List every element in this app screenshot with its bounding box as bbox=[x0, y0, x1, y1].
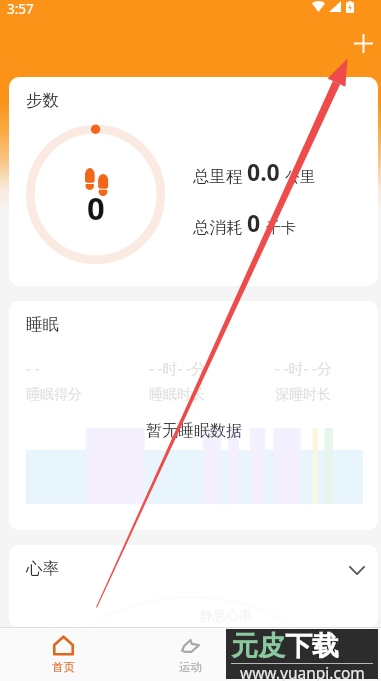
staticText: 睡眠时长 bbox=[149, 386, 205, 404]
staticText: 首页 bbox=[52, 660, 75, 674]
staticText: 暂无睡眠数据 bbox=[146, 421, 242, 441]
button[interactable]: Add bbox=[341, 21, 381, 65]
staticText: - -时- -分 bbox=[149, 358, 207, 378]
staticText: 公里 bbox=[285, 168, 315, 187]
staticText: 心率 bbox=[26, 558, 59, 579]
button[interactable]: 步数 bbox=[9, 77, 378, 286]
staticText: 我的 bbox=[306, 660, 329, 674]
staticText: 0.0 bbox=[247, 156, 280, 187]
staticText: 3:57 bbox=[7, 0, 34, 18]
staticText: 静息心率 bbox=[200, 607, 252, 623]
staticText: 总里程 bbox=[193, 166, 243, 187]
staticText: 总消耗 bbox=[193, 217, 243, 238]
staticText: - - bbox=[26, 358, 40, 378]
staticText: 下载 bbox=[285, 629, 339, 663]
staticText: - -时- -分 bbox=[275, 358, 333, 378]
staticText: 深睡时长 bbox=[275, 386, 331, 404]
staticText: 千卡 bbox=[266, 219, 296, 238]
staticText: 运动 bbox=[179, 660, 202, 674]
button[interactable]: 运动 bbox=[127, 628, 254, 681]
button[interactable]: 心率 bbox=[9, 545, 378, 628]
staticText: 0 bbox=[87, 187, 105, 229]
button[interactable]: 睡眠 bbox=[9, 301, 378, 530]
button[interactable]: 我的 bbox=[254, 628, 381, 681]
button[interactable]: 首页 bbox=[0, 628, 127, 681]
staticText: 元皮 bbox=[231, 629, 285, 663]
staticText: 步数 bbox=[26, 90, 59, 111]
staticText: 睡眠 bbox=[26, 314, 59, 335]
staticText: 睡眠得分 bbox=[26, 386, 82, 404]
staticText: 0 bbox=[247, 207, 261, 238]
button[interactable]: Expand heart rate bbox=[339, 552, 375, 588]
staticText: www.yuanpi.com bbox=[240, 662, 365, 681]
